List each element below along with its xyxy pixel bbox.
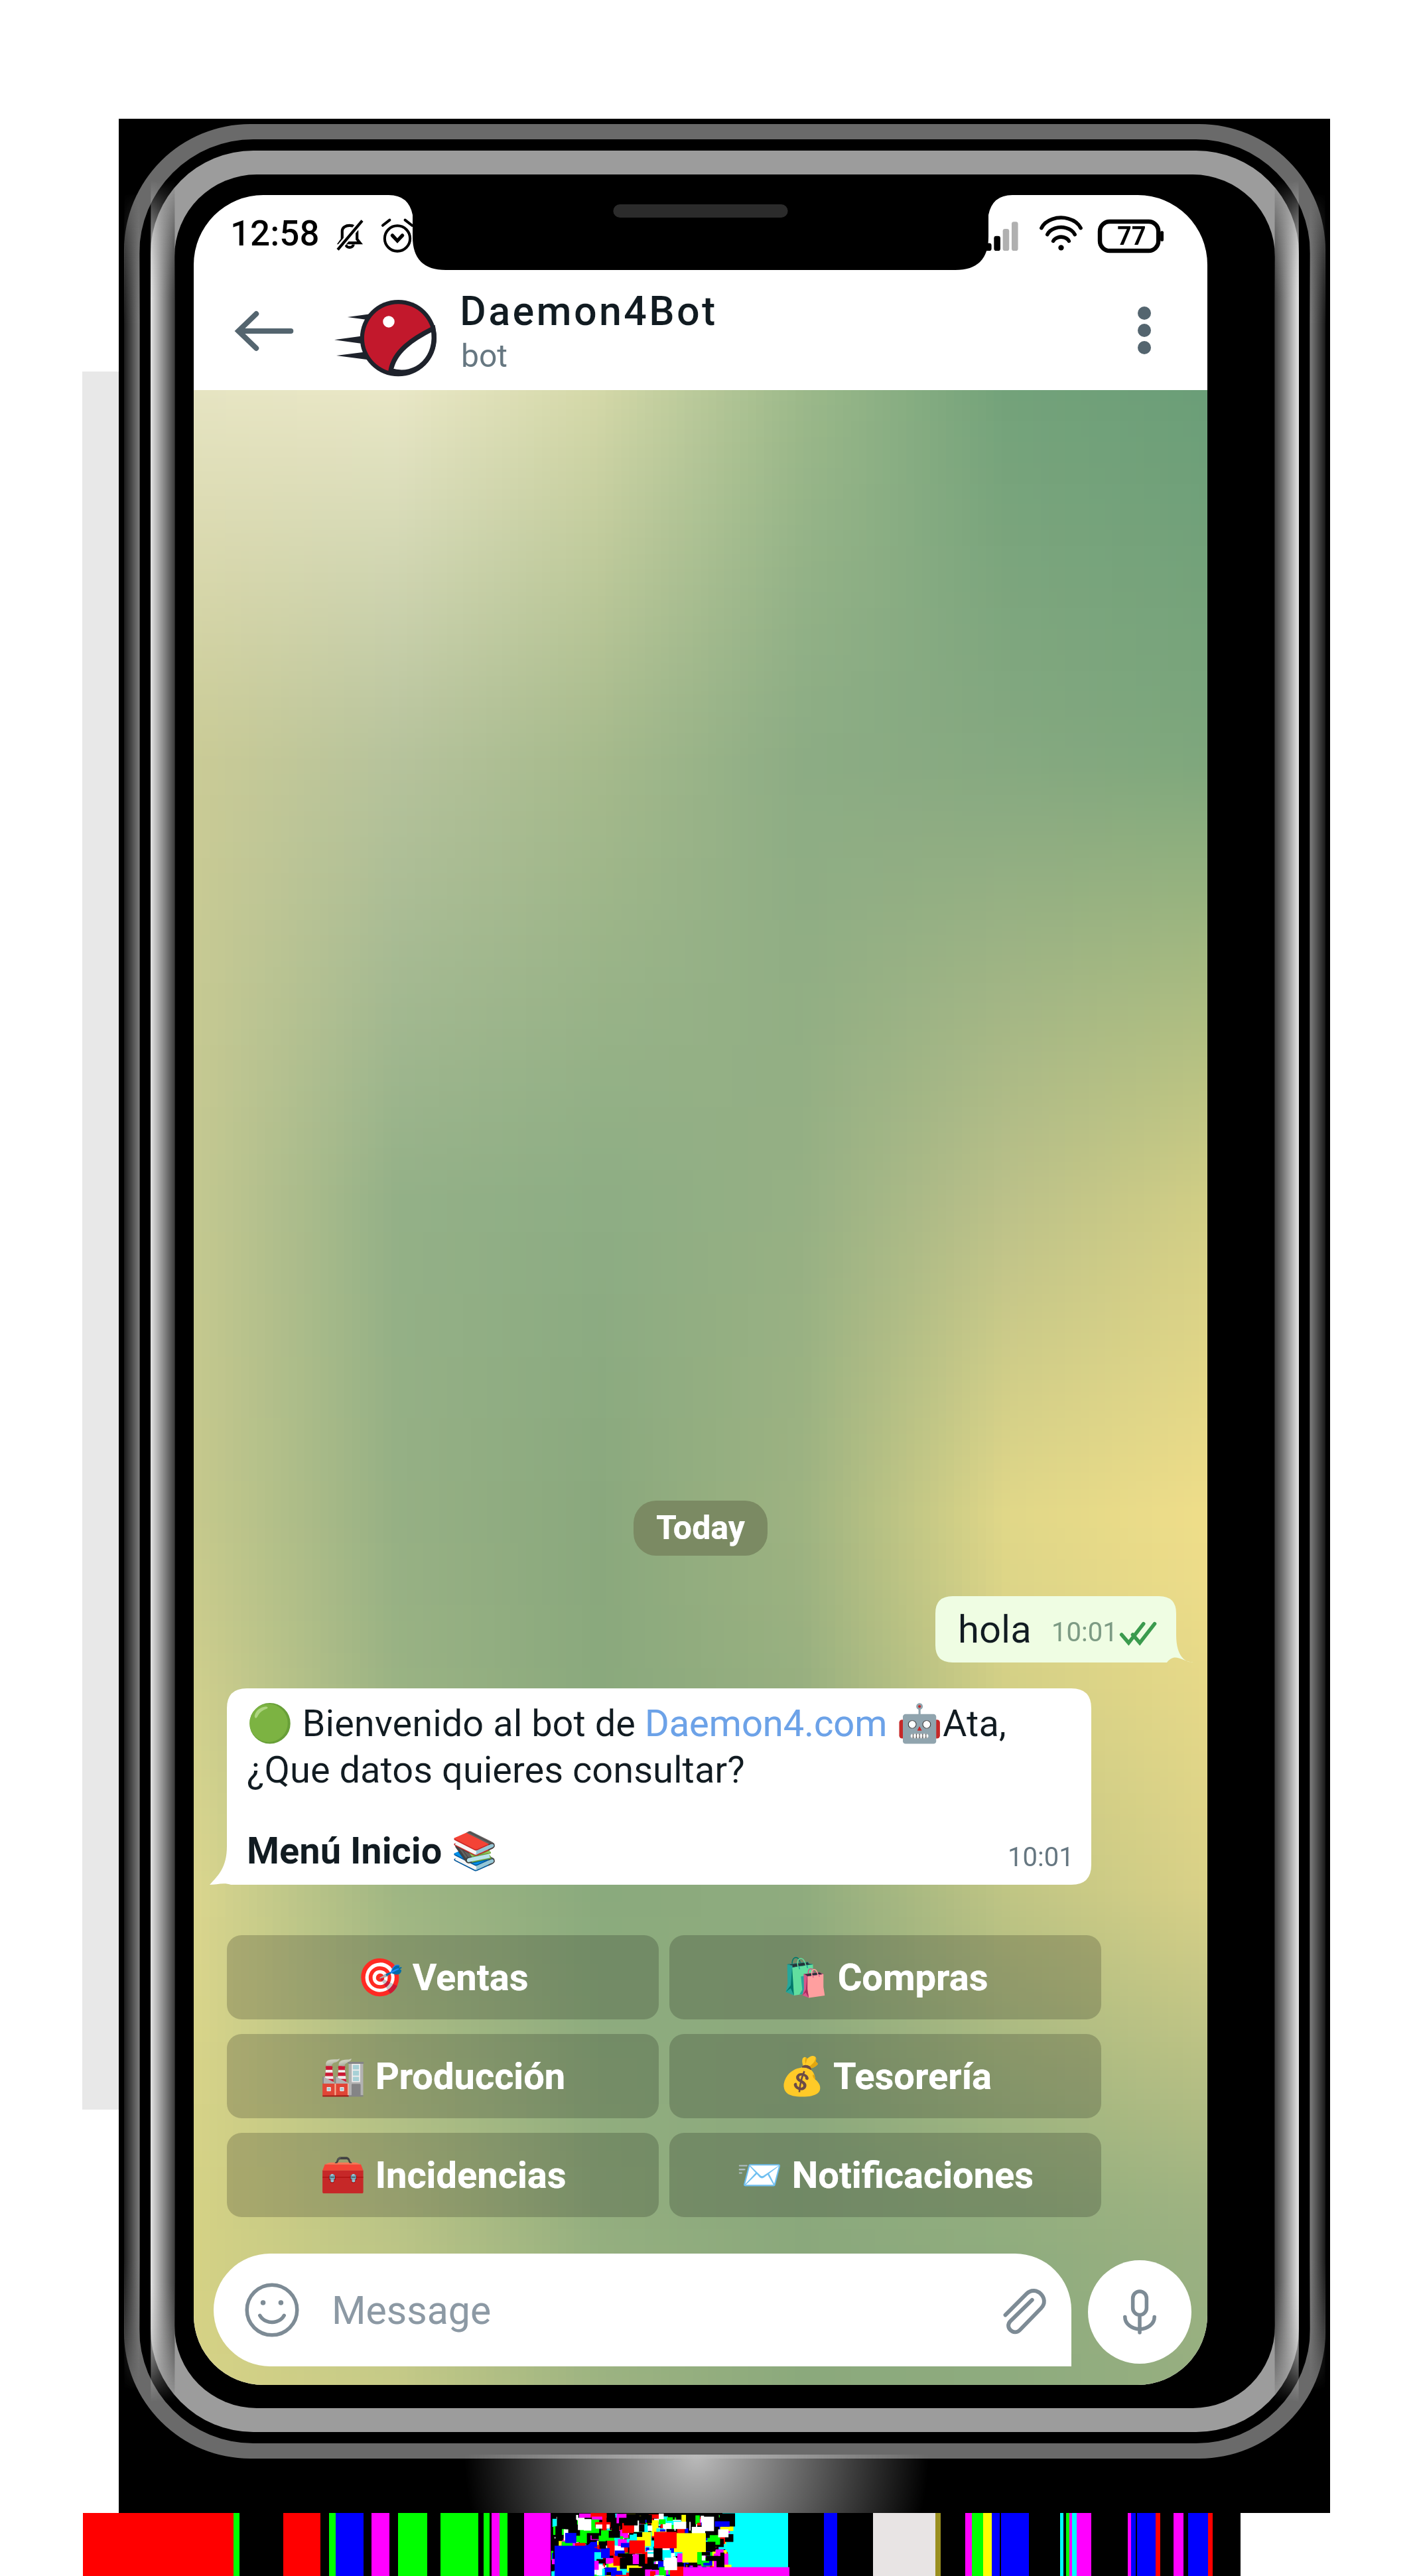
staticText: 10:01 — [1008, 1842, 1074, 1873]
button[interactable]: 📨 Notificaciones — [669, 2133, 1101, 2217]
button[interactable]: 🎯 Ventas — [227, 1935, 659, 2019]
staticText: 🏭 Producción — [320, 2055, 566, 2098]
staticText: 🎯 Ventas — [357, 1956, 529, 2000]
staticText: 12:58 — [230, 213, 320, 254]
staticText: 77 — [1117, 222, 1146, 251]
staticText: 10:01 — [1051, 1617, 1118, 1648]
staticText: 📨 Notificaciones — [736, 2153, 1034, 2197]
staticText: Today — [656, 1509, 745, 1548]
staticText: Menú Inicio 📚 — [247, 1829, 498, 1873]
button[interactable]: 🛍 Compras — [669, 1935, 1101, 2019]
button[interactable]: Back — [224, 291, 304, 371]
button[interactable]: Record voice message — [1088, 2260, 1191, 2364]
staticText: 💰 Tesorería — [779, 2055, 992, 2098]
button[interactable]: 🧰 Incidencias — [227, 2133, 659, 2217]
staticText: 🛍 Compras — [782, 1956, 988, 2000]
button[interactable]: More options — [1108, 294, 1181, 367]
staticText: bot — [461, 337, 508, 374]
staticText: hola — [958, 1607, 1032, 1652]
staticText: Daemon4Bot — [460, 287, 718, 334]
staticText: 🟢 Bienvenido al bot de Daemon4.com 🤖Ata,… — [247, 1702, 1074, 1792]
staticText: Message — [332, 2287, 492, 2333]
button[interactable]: 💰 Tesorería — [669, 2034, 1101, 2118]
button[interactable]: 🏭 Producción — [227, 2034, 659, 2118]
staticText: 🧰 Incidencias — [320, 2153, 567, 2197]
button[interactable]: Message — [214, 2254, 1071, 2366]
